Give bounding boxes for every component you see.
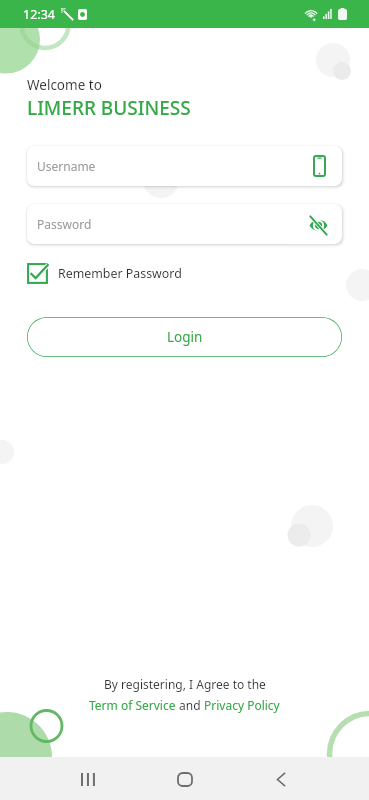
staticText: and — [176, 697, 204, 713]
staticText: By registering, I Agree to the — [104, 676, 266, 692]
staticText: Welcome to — [27, 76, 102, 94]
button[interactable]: Term of Service — [89, 697, 176, 713]
staticText: LIMERR BUSINESS — [27, 95, 191, 121]
button[interactable]: Password — [27, 204, 342, 244]
staticText: Password — [37, 216, 92, 232]
staticText: 12:34 — [23, 6, 55, 23]
other: Show password — [309, 216, 328, 235]
button[interactable]: Back — [261, 759, 301, 799]
button[interactable]: Remember Password — [27, 263, 182, 284]
button[interactable]: Login — [27, 317, 342, 357]
other: Phone number — [313, 155, 326, 177]
button[interactable]: Recent apps — [68, 759, 108, 799]
staticText: Remember Password — [58, 265, 182, 282]
staticText: Username — [37, 158, 96, 174]
staticText: Login — [167, 328, 203, 346]
button[interactable]: Home — [165, 759, 205, 799]
button[interactable]: Username — [27, 146, 342, 186]
button[interactable]: Privacy Policy — [204, 697, 280, 713]
